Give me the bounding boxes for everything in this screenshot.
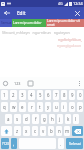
staticText: 3 xyxy=(21,92,24,98)
button[interactable]: 4 xyxy=(28,90,35,100)
staticText: nyangigukaun xyxy=(57,43,82,48)
staticText: w xyxy=(12,104,16,110)
staticText: y xyxy=(47,104,50,110)
staticText: m xyxy=(65,128,70,134)
button[interactable]: 9 xyxy=(69,90,75,100)
button[interactable]: s xyxy=(14,114,21,124)
staticText: Lorem ipsum dolor sit amet xyxy=(47,19,84,27)
button[interactable]: d xyxy=(23,114,30,124)
staticText: e xyxy=(21,104,24,110)
staticText: ?123 xyxy=(2,142,9,146)
button[interactable]: ?123 xyxy=(1,138,9,149)
button[interactable]: z xyxy=(14,126,21,136)
staticText: , xyxy=(13,141,15,147)
button[interactable]: Selesai xyxy=(66,138,83,149)
button[interactable]: g xyxy=(41,114,47,124)
button[interactable]: f xyxy=(32,114,39,124)
staticText: 7 xyxy=(55,92,58,98)
button[interactable]: r xyxy=(28,102,35,112)
staticText: Edit xyxy=(17,10,26,16)
staticText: a xyxy=(7,116,10,122)
button[interactable]: v xyxy=(40,126,46,136)
button[interactable]: y xyxy=(45,102,51,112)
button[interactable]: Lorem ipsum dolor sit amet xyxy=(46,19,84,27)
button[interactable]: 7 xyxy=(53,90,59,100)
button[interactable]: u xyxy=(53,102,59,112)
staticText: g xyxy=(43,116,46,122)
staticText: i xyxy=(63,104,65,110)
button[interactable]: 3 xyxy=(19,90,26,100)
button[interactable]: Emoji xyxy=(0,78,11,89)
staticText: c xyxy=(34,128,37,134)
button[interactable]: n xyxy=(56,126,62,136)
staticText: h xyxy=(51,116,54,122)
button[interactable]: Shift xyxy=(1,126,12,136)
staticText: z xyxy=(16,128,19,134)
staticText: p xyxy=(79,104,82,110)
button[interactable]: c xyxy=(32,126,38,136)
button[interactable]: e xyxy=(19,102,26,112)
button[interactable]: k xyxy=(65,114,71,124)
staticText: s xyxy=(16,116,19,122)
button[interactable]: 2 xyxy=(10,90,17,100)
button[interactable]: 123 xyxy=(11,78,24,89)
button[interactable]: 6 xyxy=(45,90,51,100)
button[interactable]: b xyxy=(48,126,54,136)
staticText: v xyxy=(42,128,45,134)
staticText: Lorem ipsum dolor xyxy=(13,21,42,25)
staticText: 5 xyxy=(39,92,42,98)
button[interactable]: o xyxy=(69,102,75,112)
staticText: l xyxy=(75,116,77,122)
button[interactable]: , xyxy=(11,138,17,149)
button[interactable]: j xyxy=(57,114,63,124)
staticText: r xyxy=(31,104,33,110)
button[interactable]: i xyxy=(61,102,67,112)
staticText: 4 xyxy=(30,92,33,98)
staticText: x xyxy=(25,128,28,134)
staticText: t xyxy=(39,104,41,110)
button[interactable]: Clipboard xyxy=(24,78,37,89)
staticText: n xyxy=(58,128,61,134)
staticText: u xyxy=(55,104,58,110)
button[interactable]: 0 xyxy=(77,90,83,100)
staticText: 9 xyxy=(71,92,74,98)
staticText: b xyxy=(50,128,53,134)
staticText: 12:34 xyxy=(73,1,83,6)
staticText: . xyxy=(60,141,62,147)
button[interactable]: q xyxy=(1,102,8,112)
button[interactable]: Back xyxy=(0,7,14,19)
staticText: 4G xyxy=(58,1,63,6)
button[interactable]: 5 xyxy=(37,90,43,100)
button[interactable]: l xyxy=(73,114,79,124)
staticText: 2 xyxy=(12,92,15,98)
staticText: 8 xyxy=(63,92,66,98)
staticText: f xyxy=(35,116,37,122)
staticText: Semua xyxy=(1,21,12,25)
staticText: 0 xyxy=(79,92,82,98)
staticText: 6 xyxy=(47,92,50,98)
staticText: 1 xyxy=(3,92,6,98)
staticText: q xyxy=(3,104,6,110)
button[interactable]: Close xyxy=(71,7,84,19)
button[interactable]: Semua xyxy=(0,19,12,27)
button[interactable]: t xyxy=(37,102,43,112)
button[interactable]: w xyxy=(10,102,17,112)
staticText: Sfecunt_mhkeyn ngurrdeun nguteyon xyxy=(2,30,70,35)
button[interactable]: h xyxy=(49,114,55,124)
staticText: ngdtetyrkkun, xyxy=(58,37,82,42)
staticText: d xyxy=(25,116,28,122)
staticText: Selesai xyxy=(69,141,81,146)
staticText: k xyxy=(67,116,70,122)
button[interactable]: Backspace xyxy=(72,126,83,136)
button[interactable]: a xyxy=(5,114,12,124)
button[interactable]: p xyxy=(77,102,83,112)
button[interactable]: More options xyxy=(75,78,84,89)
button[interactable]: 1 xyxy=(1,90,8,100)
button[interactable]: 8 xyxy=(61,90,67,100)
staticText: 123 xyxy=(14,81,21,86)
button[interactable]: Lorem ipsum dolor xyxy=(12,19,46,27)
button[interactable]: . xyxy=(58,138,64,149)
button[interactable]: x xyxy=(23,126,30,136)
button[interactable]: m xyxy=(64,126,70,136)
